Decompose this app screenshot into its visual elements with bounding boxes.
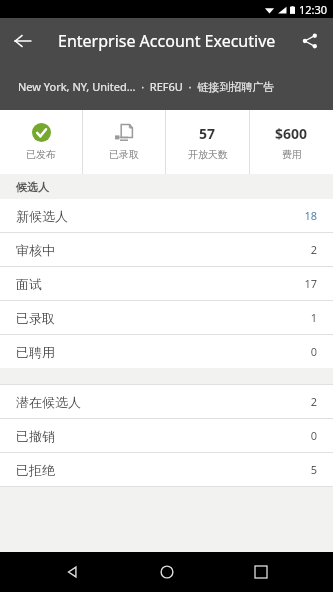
staticText: 已录取: [16, 310, 55, 326]
staticText: 候选人: [16, 180, 49, 194]
staticText: New York, NY, United… · REF6U · 链接到招聘广告: [18, 79, 275, 94]
button[interactable]: Back: [50, 552, 94, 592]
staticText: 2: [310, 394, 317, 409]
staticText: 18: [304, 208, 317, 223]
staticText: 已发布: [26, 148, 56, 161]
staticText: 1: [310, 310, 317, 325]
staticText: 已聘用: [16, 344, 55, 360]
staticText: 5: [310, 462, 317, 477]
button[interactable]: 已录取: [0, 301, 333, 334]
staticText: 57: [199, 124, 216, 143]
staticText: 12:30: [299, 2, 328, 17]
staticText: 2: [310, 242, 317, 257]
staticText: 新候选人: [16, 208, 68, 224]
button[interactable]: Share: [293, 24, 327, 58]
button[interactable]: 新候选人: [0, 199, 333, 232]
button[interactable]: 已撤销: [0, 419, 333, 452]
button[interactable]: 审核中: [0, 233, 333, 266]
staticText: 17: [304, 276, 317, 291]
button[interactable]: Back: [6, 24, 40, 58]
staticText: 费用: [282, 148, 302, 161]
button[interactable]: Recents: [239, 552, 283, 592]
staticText: Enterprise Account Executive: [58, 30, 276, 52]
staticText: 已录取: [109, 148, 139, 161]
staticText: 0: [310, 428, 317, 443]
button[interactable]: 已录取: [83, 110, 165, 174]
staticText: 面试: [16, 276, 42, 292]
staticText: 0: [310, 344, 317, 359]
button[interactable]: 57: [166, 110, 249, 174]
button[interactable]: 已拒绝: [0, 453, 333, 486]
button[interactable]: Home: [145, 552, 189, 592]
staticText: 已拒绝: [16, 462, 55, 478]
button[interactable]: $600: [250, 110, 333, 174]
button[interactable]: 潜在候选人: [0, 385, 333, 418]
staticText: 开放天数: [188, 148, 228, 161]
staticText: $600: [275, 124, 308, 143]
staticText: 已撤销: [16, 428, 55, 444]
staticText: 潜在候选人: [16, 394, 81, 410]
staticText: 审核中: [16, 242, 55, 258]
button[interactable]: 已发布: [0, 110, 82, 174]
button[interactable]: 面试: [0, 267, 333, 300]
button[interactable]: 已聘用: [0, 335, 333, 368]
